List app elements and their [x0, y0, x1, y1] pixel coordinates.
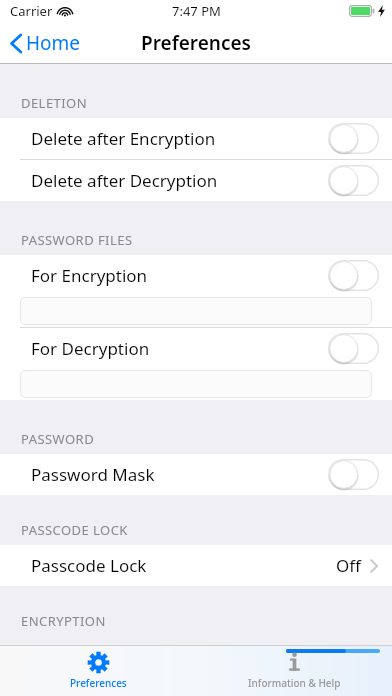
- button[interactable]: Password file path: [20, 297, 372, 325]
- staticText: Preferences: [141, 30, 251, 56]
- button[interactable]: Password Mask: [0, 454, 392, 495]
- staticText: Delete after Encryption: [31, 127, 216, 150]
- button[interactable]: Toggle: [328, 333, 379, 364]
- button[interactable]: Preferences: [0, 645, 196, 696]
- staticText: PASSCODE LOCK: [21, 521, 128, 539]
- staticText: Off: [336, 554, 361, 577]
- staticText: Carrier: [10, 2, 53, 20]
- staticText: Password Mask: [31, 463, 155, 486]
- staticText: Home: [26, 30, 81, 56]
- staticText: Information & Help: [248, 676, 341, 690]
- button[interactable]: Toggle: [328, 123, 379, 154]
- button[interactable]: For Decryption: [0, 328, 392, 369]
- staticText: PASSWORD: [21, 430, 95, 448]
- button[interactable]: Passcode Lock: [0, 545, 392, 586]
- staticText: Passcode Lock: [31, 554, 147, 577]
- staticText: DELETION: [21, 94, 88, 112]
- button[interactable]: Delete after Decryption: [0, 160, 392, 201]
- button[interactable]: Toggle: [328, 165, 379, 196]
- staticText: For Encryption: [31, 264, 148, 287]
- staticText: ENCRYPTION: [21, 612, 106, 630]
- button[interactable]: Delete after Encryption: [0, 118, 392, 159]
- staticText: Delete after Decryption: [31, 169, 218, 192]
- staticText: For Decryption: [31, 337, 150, 360]
- staticText: Preferences: [70, 676, 127, 690]
- staticText: 7:47 PM: [172, 2, 221, 20]
- button[interactable]: Toggle: [328, 260, 379, 291]
- staticText: PASSWORD FILES: [21, 231, 133, 249]
- button[interactable]: Home: [0, 25, 93, 61]
- button[interactable]: Password file path: [20, 370, 372, 398]
- button[interactable]: For Encryption: [0, 255, 392, 296]
- button[interactable]: Information & Help: [196, 645, 392, 696]
- button[interactable]: Toggle: [328, 459, 379, 490]
